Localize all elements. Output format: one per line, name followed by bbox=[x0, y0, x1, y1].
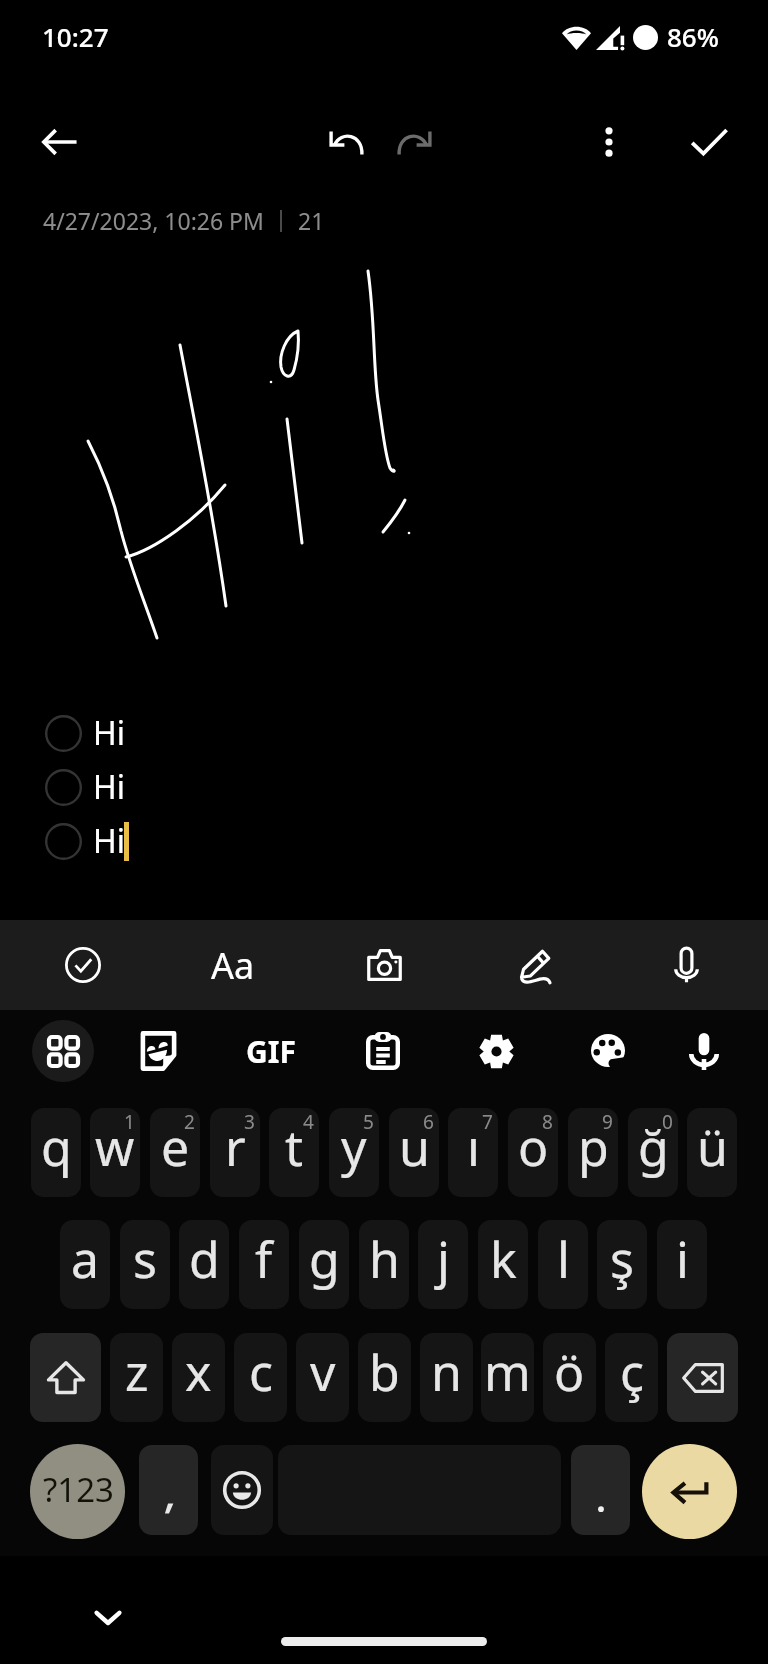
button[interactable]: ?123 bbox=[30, 1444, 125, 1539]
staticText: 21 bbox=[298, 205, 325, 236]
staticText: 8 bbox=[542, 1109, 553, 1135]
staticText: k bbox=[490, 1225, 517, 1293]
staticText: m bbox=[484, 1338, 531, 1406]
button[interactable]: Theme bbox=[577, 1020, 639, 1082]
button[interactable]: Voice input bbox=[673, 1020, 735, 1082]
button[interactable]: Hide keyboard bbox=[76, 1585, 140, 1649]
button[interactable]: ü bbox=[687, 1108, 737, 1197]
button[interactable]: k bbox=[478, 1220, 528, 1309]
button[interactable]: Camera bbox=[339, 920, 429, 1010]
button[interactable]: ö bbox=[543, 1333, 596, 1422]
staticText: j bbox=[437, 1225, 450, 1293]
staticText: 6 bbox=[423, 1109, 434, 1135]
staticText: ?123 bbox=[43, 1467, 114, 1512]
staticText: y bbox=[341, 1113, 367, 1181]
button[interactable]: x bbox=[172, 1333, 225, 1422]
button[interactable]: v bbox=[296, 1333, 349, 1422]
button[interactable]: j bbox=[418, 1220, 468, 1309]
staticText: o bbox=[518, 1113, 549, 1181]
button[interactable]: g bbox=[299, 1220, 349, 1309]
button[interactable]: Hi bbox=[0, 814, 768, 868]
button[interactable]: Draw bbox=[490, 920, 580, 1010]
button[interactable]: y bbox=[329, 1108, 379, 1197]
button[interactable]: Clipboard bbox=[352, 1020, 414, 1082]
staticText: g bbox=[309, 1225, 340, 1293]
staticText: d bbox=[189, 1225, 220, 1293]
button[interactable]: ç bbox=[605, 1333, 658, 1422]
staticText: ü bbox=[697, 1113, 728, 1181]
staticText: 0 bbox=[662, 1109, 673, 1135]
staticText: l bbox=[557, 1225, 570, 1293]
button[interactable]: More options bbox=[576, 109, 642, 175]
button[interactable]: o bbox=[508, 1108, 558, 1197]
button[interactable]: Redo bbox=[381, 109, 447, 175]
button[interactable]: Stickers bbox=[127, 1020, 189, 1082]
button[interactable]: m bbox=[481, 1333, 534, 1422]
staticText: i bbox=[676, 1225, 689, 1293]
staticText: p bbox=[578, 1113, 609, 1181]
button[interactable]: Enter bbox=[642, 1444, 737, 1539]
button[interactable]: b bbox=[358, 1333, 411, 1422]
button[interactable]: Save bbox=[676, 109, 742, 175]
button[interactable]: Apps bbox=[32, 1020, 94, 1082]
button[interactable]: Undo bbox=[313, 109, 379, 175]
staticText: ş bbox=[610, 1225, 634, 1293]
button[interactable]: Text format bbox=[188, 920, 278, 1010]
staticText: 10:27 bbox=[42, 19, 109, 54]
button[interactable]: Emoji bbox=[211, 1445, 273, 1535]
button[interactable]: ı bbox=[448, 1108, 498, 1197]
staticText: 86% bbox=[667, 19, 719, 54]
staticText: Hi bbox=[93, 711, 125, 755]
staticText: s bbox=[133, 1225, 157, 1293]
button[interactable]: Hi bbox=[0, 760, 768, 814]
button[interactable]: a bbox=[60, 1220, 110, 1309]
button[interactable]: q bbox=[31, 1108, 81, 1197]
button[interactable]: d bbox=[179, 1220, 229, 1309]
button[interactable]: l bbox=[538, 1220, 588, 1309]
staticText: 2 bbox=[184, 1109, 195, 1135]
staticText: 1 bbox=[124, 1109, 135, 1135]
button[interactable]: h bbox=[359, 1220, 409, 1309]
button[interactable]: p bbox=[568, 1108, 618, 1197]
button[interactable]: w bbox=[90, 1108, 140, 1197]
button[interactable]: ş bbox=[597, 1220, 647, 1309]
staticText: r bbox=[225, 1113, 246, 1181]
staticText: Aa bbox=[211, 941, 255, 990]
button[interactable]: r bbox=[210, 1108, 260, 1197]
button[interactable]: z bbox=[110, 1333, 163, 1422]
button[interactable]: Hi bbox=[0, 706, 768, 760]
button[interactable]: u bbox=[389, 1108, 439, 1197]
button[interactable]: Period bbox=[571, 1445, 630, 1535]
button[interactable]: ğ bbox=[628, 1108, 678, 1197]
staticText: Hi bbox=[93, 765, 125, 809]
button[interactable]: Comma bbox=[139, 1445, 198, 1535]
staticText: e bbox=[161, 1113, 190, 1181]
button[interactable]: Shift bbox=[30, 1333, 101, 1422]
staticText: 5 bbox=[363, 1109, 374, 1135]
staticText: n bbox=[431, 1338, 462, 1406]
button[interactable]: Back bbox=[26, 108, 94, 176]
staticText: x bbox=[185, 1338, 212, 1406]
staticText: v bbox=[310, 1338, 336, 1406]
staticText: ö bbox=[554, 1338, 585, 1406]
button[interactable]: t bbox=[269, 1108, 319, 1197]
staticText: Hi bbox=[93, 819, 125, 863]
button[interactable]: Backspace bbox=[667, 1333, 738, 1422]
button[interactable]: s bbox=[120, 1220, 170, 1309]
staticText: q bbox=[41, 1113, 72, 1181]
button[interactable]: c bbox=[234, 1333, 287, 1422]
button[interactable]: i bbox=[657, 1220, 707, 1309]
button[interactable]: n bbox=[420, 1333, 473, 1422]
button[interactable]: GIF bbox=[240, 1020, 302, 1082]
button[interactable]: e bbox=[150, 1108, 200, 1197]
button[interactable]: Settings bbox=[465, 1020, 527, 1082]
staticText: GIF bbox=[246, 1031, 296, 1072]
staticText: z bbox=[125, 1338, 149, 1406]
staticText: ç bbox=[620, 1338, 644, 1406]
button[interactable]: f bbox=[239, 1220, 289, 1309]
button[interactable]: Checklist bbox=[38, 920, 128, 1010]
button[interactable]: Voice bbox=[641, 920, 731, 1010]
staticText: a bbox=[71, 1225, 100, 1293]
staticText: ğ bbox=[638, 1113, 669, 1181]
